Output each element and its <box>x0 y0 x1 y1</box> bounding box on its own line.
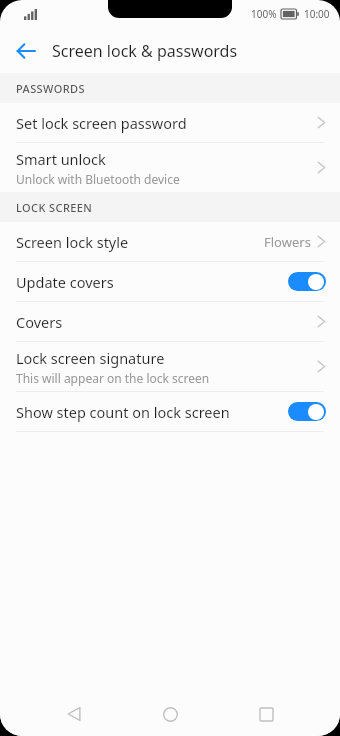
button[interactable]: Update covers <box>0 262 340 301</box>
button[interactable]: Smart unlock <box>0 143 340 192</box>
button[interactable]: Home <box>148 692 192 736</box>
staticText: Set lock screen password <box>16 113 187 133</box>
button[interactable]: Recent apps <box>244 692 288 736</box>
staticText: 100% <box>251 7 277 21</box>
button[interactable]: Back <box>52 692 96 736</box>
staticText: LOCK SCREEN <box>16 200 93 215</box>
staticText: Unlock with Bluetooth device <box>16 171 180 187</box>
button[interactable]: Set lock screen password <box>0 103 340 142</box>
staticText: Screen lock style <box>16 232 129 252</box>
staticText: Covers <box>16 312 63 332</box>
staticText: Update covers <box>16 272 114 292</box>
button[interactable]: Covers <box>0 302 340 341</box>
staticText: Flowers <box>264 233 311 251</box>
button[interactable]: Lock screen signature <box>0 342 340 391</box>
staticText: This will appear on the lock screen <box>16 370 210 386</box>
staticText: Screen lock & passwords <box>52 40 238 62</box>
staticText: Show step count on lock screen <box>16 402 230 422</box>
staticText: Smart unlock <box>16 149 106 169</box>
staticText: Lock screen signature <box>16 348 165 368</box>
button[interactable]: Show step count on lock screen <box>0 392 340 431</box>
staticText: PASSWORDS <box>16 81 85 96</box>
staticText: 10:00 <box>304 7 330 21</box>
button[interactable]: Toggle Show step count on lock screen <box>288 402 326 421</box>
button[interactable]: Screen lock style <box>0 222 340 261</box>
button[interactable]: Toggle Update covers <box>288 272 326 291</box>
button[interactable]: Back <box>8 33 44 69</box>
